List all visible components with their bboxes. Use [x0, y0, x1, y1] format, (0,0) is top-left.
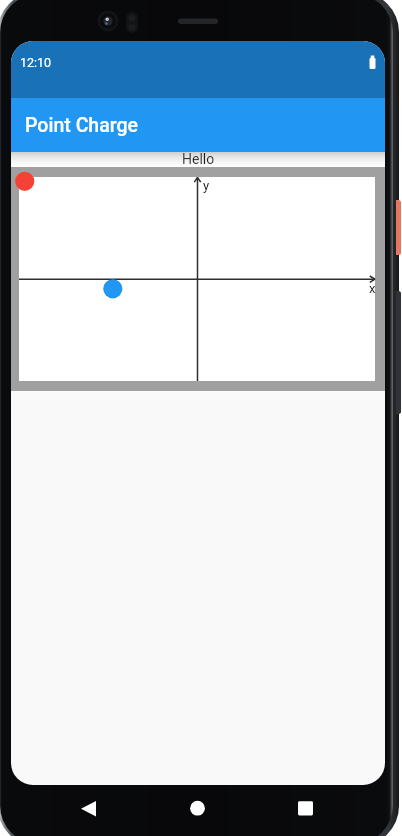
staticText: Point Charge — [25, 114, 138, 137]
staticText: Hello — [182, 151, 215, 166]
staticText: y — [203, 178, 210, 193]
staticText: 12:10 — [20, 55, 52, 70]
button[interactable]: Recent apps — [288, 792, 324, 828]
button[interactable]: Home — [180, 792, 216, 828]
button[interactable]: Back — [70, 792, 106, 828]
staticText: x — [369, 281, 376, 296]
